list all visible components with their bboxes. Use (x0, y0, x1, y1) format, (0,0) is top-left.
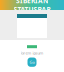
staticText: lorem ipsum (20, 50, 43, 55)
staticText: Go (29, 59, 34, 65)
staticText: STATUSBAR (13, 5, 50, 14)
button[interactable]: Go (27, 57, 36, 67)
staticText: SIBERIAN (16, 0, 48, 5)
